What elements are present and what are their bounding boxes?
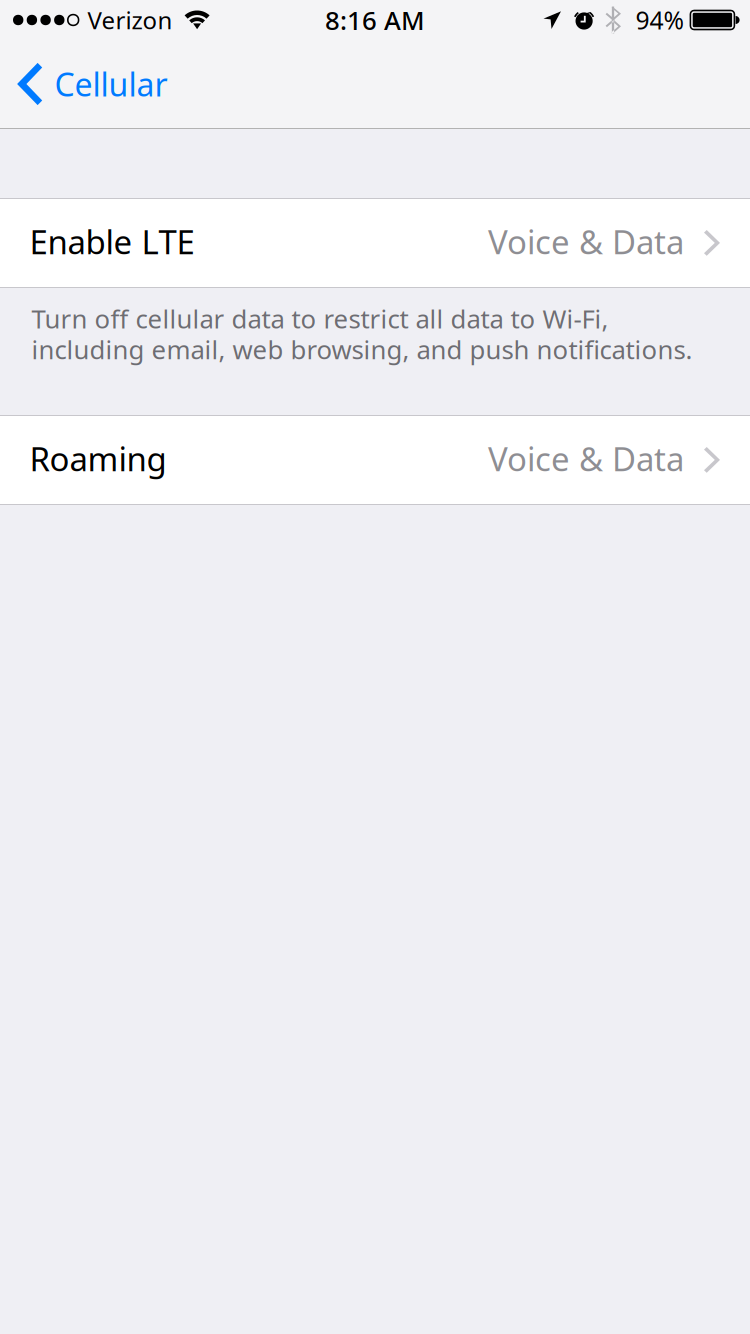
staticText: Turn off cellular data to restrict all d… [31, 303, 692, 365]
staticText: 8:16 AM [325, 2, 425, 37]
button[interactable]: Back to Cellular [0, 40, 183, 128]
staticText: Voice & Data [488, 219, 684, 264]
button[interactable]: Roaming [0, 415, 750, 505]
staticText: 94% [635, 3, 683, 37]
staticText: Voice & Data [488, 436, 684, 481]
staticText: Verizon [88, 4, 173, 36]
staticText: Cellular [54, 62, 167, 106]
staticText: Enable LTE [29, 219, 194, 264]
button[interactable]: Enable LTE [0, 198, 750, 288]
staticText: Roaming [29, 436, 166, 481]
